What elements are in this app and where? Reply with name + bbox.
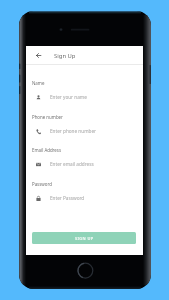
staticText: Enter email address bbox=[50, 161, 94, 167]
button[interactable]: Back bbox=[32, 49, 45, 62]
staticText: Enter your name bbox=[50, 94, 87, 100]
staticText: Enter Password bbox=[50, 195, 85, 201]
staticText: SIGN UP bbox=[75, 236, 94, 241]
staticText: Password bbox=[32, 181, 52, 187]
button[interactable]: Enter your name bbox=[29, 91, 140, 103]
staticText: Name bbox=[32, 80, 45, 86]
staticText: Phone number bbox=[32, 114, 63, 120]
staticText: Sign Up bbox=[54, 52, 76, 60]
button[interactable]: Enter phone number bbox=[29, 125, 140, 137]
button[interactable]: SIGN UP bbox=[32, 232, 136, 244]
staticText: Email Address bbox=[32, 147, 62, 153]
staticText: Enter phone number bbox=[50, 128, 97, 134]
button[interactable]: Enter Password bbox=[29, 192, 140, 204]
button[interactable]: Enter email address bbox=[29, 158, 140, 170]
